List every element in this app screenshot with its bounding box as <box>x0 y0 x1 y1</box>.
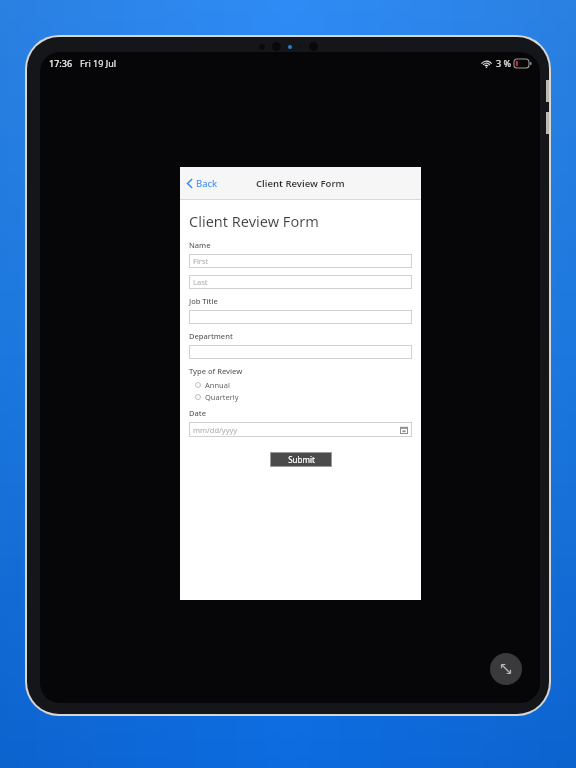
button[interactable]: First <box>189 254 412 268</box>
staticText: Fri 19 Jul <box>80 57 117 69</box>
staticText: Last <box>193 277 208 287</box>
staticText: Client Review Form <box>189 211 319 231</box>
staticText: Date <box>189 408 206 418</box>
button[interactable]: Resize window <box>490 653 522 685</box>
staticText: 3 % <box>496 57 511 69</box>
button[interactable] <box>189 345 412 359</box>
staticText: Name <box>189 240 211 250</box>
staticText: Job Title <box>189 296 218 306</box>
staticText: First <box>193 256 209 266</box>
staticText: Type of Review <box>189 366 243 376</box>
staticText: Annual <box>205 380 230 390</box>
staticText: 17:36 <box>49 57 73 69</box>
button[interactable]: Annual <box>195 380 230 390</box>
staticText: Quarterly <box>205 392 239 402</box>
button[interactable]: Last <box>189 275 412 289</box>
button[interactable]: Open calendar <box>400 426 408 434</box>
staticText: Client Review Form <box>256 177 345 190</box>
button[interactable]: Quarterly <box>195 392 239 402</box>
staticText: Back <box>196 177 218 190</box>
staticText: Submit <box>288 454 315 465</box>
staticText: Department <box>189 331 233 341</box>
staticText: mm/dd/yyyy <box>193 425 238 435</box>
button[interactable]: mm/dd/yyyy <box>189 422 412 437</box>
button[interactable]: Submit <box>270 452 332 467</box>
button[interactable]: Back <box>187 177 218 190</box>
button[interactable] <box>189 310 412 324</box>
